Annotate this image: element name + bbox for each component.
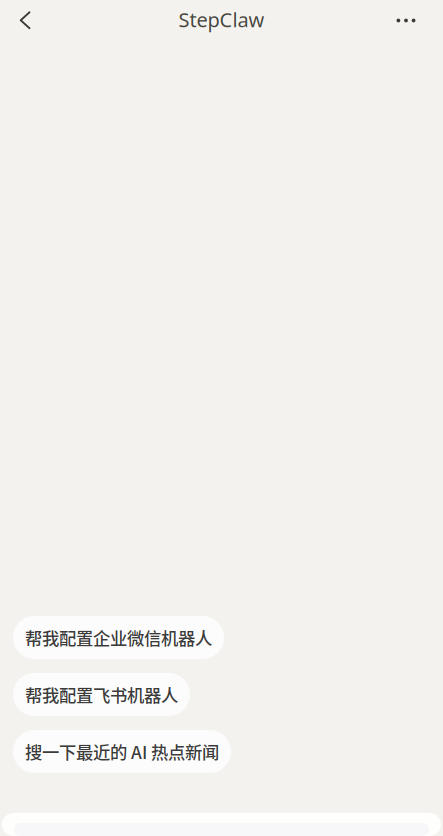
staticText: 搜一下最近的 AI 热点新闻 <box>25 739 219 764</box>
staticText: 帮我配置企业微信机器人 <box>25 625 212 650</box>
button[interactable]: 帮我配置企业微信机器人 <box>13 616 224 659</box>
button[interactable]: More options <box>386 0 426 40</box>
staticText: StepClaw <box>178 6 264 33</box>
button[interactable]: Back <box>5 0 45 40</box>
button[interactable]: 搜一下最近的 AI 热点新闻 <box>13 730 231 773</box>
button[interactable]: 帮我配置飞书机器人 <box>13 673 190 716</box>
staticText: 帮我配置飞书机器人 <box>25 682 178 707</box>
